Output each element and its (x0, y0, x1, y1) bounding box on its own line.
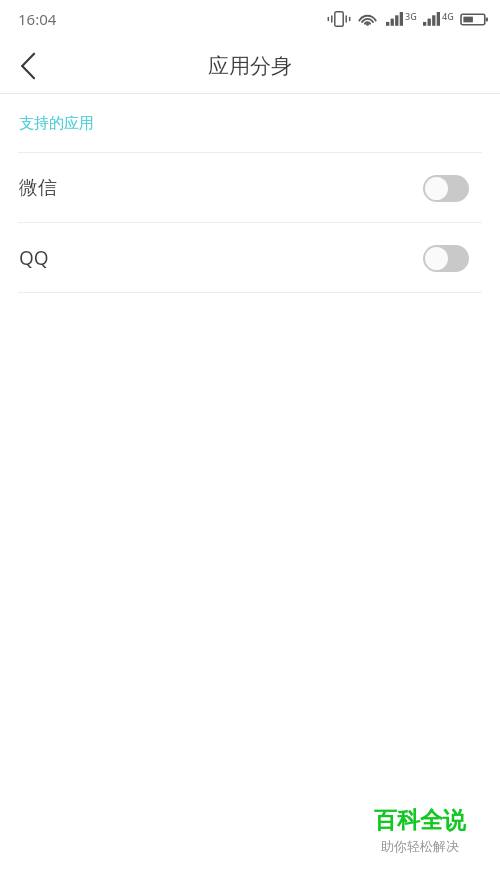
staticText: 百科全说 (374, 806, 466, 835)
staticText: 助你轻松解决 (381, 838, 459, 854)
button[interactable]: 微信 (0, 153, 500, 223)
staticText: 16:04 (18, 9, 57, 29)
staticText: 应用分身 (208, 53, 292, 79)
staticText: QQ (19, 245, 49, 271)
button[interactable]: Toggle off (423, 245, 469, 272)
button[interactable]: QQ (0, 223, 500, 293)
staticText: 4G (442, 10, 454, 22)
button[interactable]: Back (0, 38, 56, 94)
staticText: 3G (405, 10, 417, 22)
button[interactable]: Toggle off (423, 175, 469, 202)
staticText: 微信 (19, 176, 57, 200)
staticText: 支持的应用 (19, 114, 94, 133)
